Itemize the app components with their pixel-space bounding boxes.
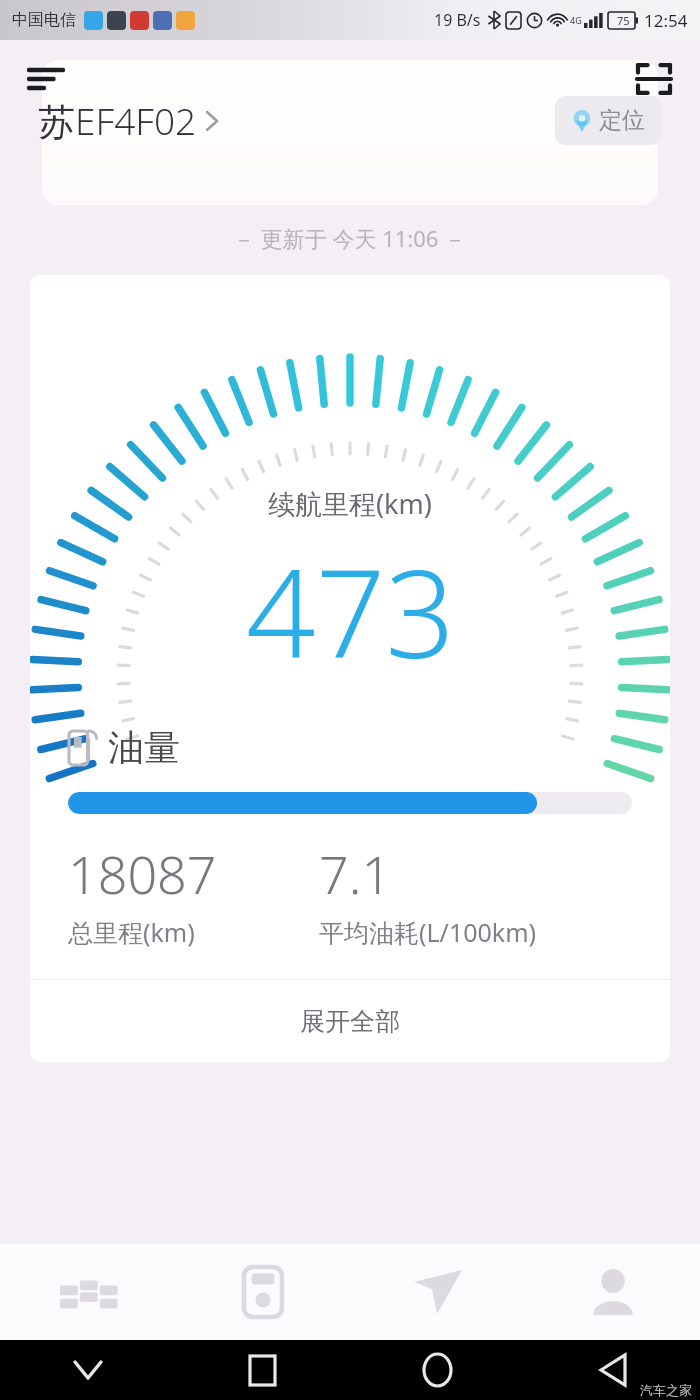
button[interactable]: Navigation [350, 1244, 525, 1340]
staticText: 473 [246, 528, 455, 694]
staticText: 汽车之家 [640, 1382, 692, 1398]
staticText: 19 B/s [434, 9, 481, 31]
staticText: 18087 [68, 838, 217, 909]
button[interactable]: Back [525, 1340, 700, 1400]
staticText: 苏EF4F02 [38, 95, 197, 146]
button[interactable]: Dashboard [0, 1244, 175, 1340]
staticText: 7.1 [319, 838, 392, 909]
staticText: 展开全部 [300, 1006, 400, 1037]
staticText: 续航里程(km) [268, 485, 432, 522]
button[interactable]: Profile [525, 1244, 700, 1340]
staticText: 油量 [108, 725, 180, 770]
staticText: 中国电信 [12, 10, 76, 30]
button[interactable]: 展开全部 [30, 980, 670, 1062]
staticText: 75 [617, 13, 630, 28]
staticText: 平均油耗(L/100km) [319, 915, 537, 949]
button[interactable]: Scan [626, 51, 682, 107]
button[interactable]: Home [350, 1340, 525, 1400]
button[interactable]: Hide [0, 1340, 175, 1400]
staticText: 4G [570, 14, 582, 26]
staticText: 定位 [599, 106, 645, 135]
staticText: 总里程(km) [68, 915, 195, 949]
staticText: 12:54 [644, 9, 688, 32]
button[interactable]: Recents [175, 1340, 350, 1400]
button[interactable]: 定位 [555, 96, 662, 145]
staticText: － 更新于 今天 11:06 － [233, 223, 467, 253]
button[interactable]: 苏EF4F02 [38, 95, 219, 146]
button[interactable]: Remote [175, 1244, 350, 1340]
button[interactable]: Menu [18, 51, 74, 107]
